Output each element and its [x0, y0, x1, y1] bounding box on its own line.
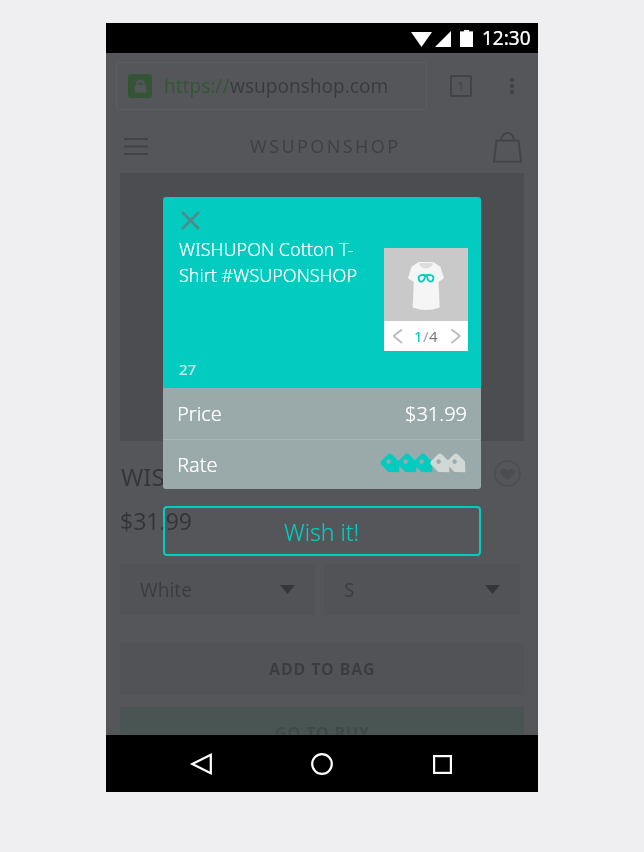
staticText: Price	[177, 400, 222, 427]
staticText: 27	[179, 359, 197, 379]
staticText: https://	[164, 73, 230, 99]
button[interactable]: Back	[178, 740, 226, 788]
button[interactable]: Recent apps	[418, 740, 466, 788]
button[interactable]: Menu	[118, 128, 154, 164]
staticText: /	[423, 326, 429, 346]
staticText: WISHUPON Cotton T- Shirt #WSUPONSHOP	[179, 237, 358, 288]
button[interactable]: Shopping bag	[485, 124, 529, 168]
button[interactable]: Home	[298, 740, 346, 788]
button[interactable]: Rate	[163, 440, 481, 489]
staticText: $31.99	[405, 400, 467, 427]
button[interactable]: White	[120, 564, 315, 615]
staticText: WISHUPON Cotton T-Shirt	[121, 460, 414, 493]
staticText: 4	[429, 326, 438, 346]
button[interactable]: Close	[172, 202, 208, 238]
button[interactable]: Previous image	[384, 323, 410, 349]
button[interactable]: Wish it!	[163, 506, 481, 556]
staticText: Rate	[177, 451, 218, 478]
button[interactable]: More options	[493, 67, 531, 105]
staticText: wsuponshop.com	[230, 73, 389, 99]
staticText: S	[344, 577, 355, 603]
button[interactable]: GO TO BUY	[120, 707, 524, 759]
button[interactable]: Open tabs	[442, 67, 480, 105]
staticText: 1	[457, 77, 465, 95]
button[interactable]: Next image	[442, 323, 468, 349]
staticText: ADD TO BAG	[269, 658, 376, 680]
staticText: WSUPONSHOP	[250, 134, 401, 159]
staticText: 1	[414, 326, 423, 346]
staticText: $31.99	[120, 505, 192, 536]
staticText: GO TO BUY	[275, 722, 370, 744]
staticText: White	[140, 577, 192, 603]
button[interactable]: ADD TO BAG	[120, 643, 524, 695]
staticText: Wish it!	[284, 516, 360, 547]
button[interactable]: https://	[116, 62, 427, 110]
button[interactable]: Price	[163, 388, 481, 439]
button[interactable]: Add to wishlist	[489, 455, 525, 491]
staticText: 12:30	[482, 25, 531, 51]
